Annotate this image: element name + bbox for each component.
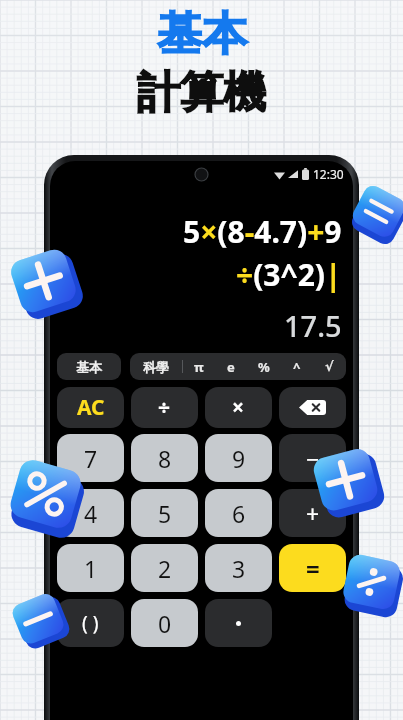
staticText: e [227,358,235,376]
staticText: 3 [232,553,246,584]
staticText: √ [325,359,334,374]
button[interactable]: √ [313,353,346,380]
button[interactable]: 6 [205,489,272,537]
staticText: ÷ [158,393,171,422]
staticText: 9 [232,443,246,474]
button[interactable]: − [279,434,346,482]
button[interactable]: + [279,489,346,537]
staticText: 5×(8-4.7)+9 [183,211,342,252]
staticText: π [194,358,204,376]
staticText: 8 [158,443,172,474]
button[interactable]: % [247,353,280,380]
staticText: 12:30 [313,166,344,182]
staticText: 計算機 [137,66,266,120]
button[interactable]: ( ) [57,599,124,647]
button[interactable]: ^ [280,353,313,380]
button[interactable]: 4 [57,489,124,537]
staticText: × [232,393,245,422]
button[interactable]: 9 [205,434,272,482]
button[interactable] [205,599,272,647]
staticText: + [306,498,320,529]
staticText: % [258,358,270,376]
staticText: 2 [158,553,172,584]
button[interactable]: 8 [131,434,198,482]
staticText: ^ [293,358,301,376]
staticText: 7 [84,443,98,474]
button[interactable]: 2 [131,544,198,592]
staticText: 基本 [76,359,102,375]
button[interactable]: 科學 [130,353,182,380]
staticText: − [306,443,320,474]
staticText: = [306,552,320,585]
button[interactable]: 基本 [57,353,121,380]
button[interactable]: 3 [205,544,272,592]
staticText: 5 [158,498,172,529]
button[interactable]: Backspace [279,387,346,428]
button[interactable]: e [215,353,247,380]
staticText: 0 [158,608,172,639]
button[interactable]: ÷ [131,387,198,428]
button[interactable]: 5 [131,489,198,537]
button[interactable]: 0 [131,599,198,647]
button[interactable]: × [205,387,272,428]
button[interactable]: AC [57,387,124,428]
staticText: 1 [84,553,98,584]
staticText: AC [77,393,105,422]
button[interactable]: π [183,353,215,380]
staticText: 6 [232,498,246,529]
staticText: 17.5 [284,306,342,345]
button[interactable]: = [279,544,346,592]
staticText: ( ) [82,610,99,636]
staticText: 4 [84,498,98,529]
staticText: 基本 [157,6,247,63]
button[interactable]: 7 [57,434,124,482]
staticText: 科學 [143,359,169,375]
staticText: ÷(3^2)| [236,254,342,295]
button[interactable]: 1 [57,544,124,592]
